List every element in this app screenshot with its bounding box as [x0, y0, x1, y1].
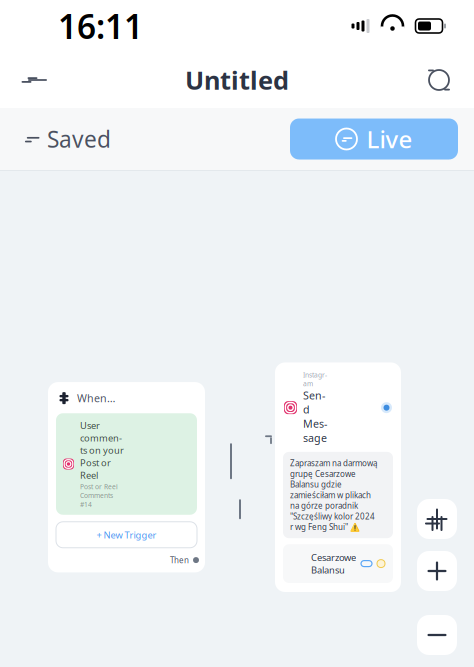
- staticText: Cesarzowe Balansu: [311, 551, 356, 576]
- staticText: 16:11: [58, 4, 143, 48]
- staticText: When…: [77, 391, 115, 405]
- staticText: Untitled: [185, 63, 289, 97]
- staticText: Then: [170, 555, 189, 565]
- button[interactable]: Auto arrange: [417, 499, 457, 539]
- staticText: Instagram: [303, 370, 327, 388]
- staticText: Saved: [47, 124, 111, 154]
- button[interactable]: Zoom in: [417, 551, 457, 591]
- staticText: Zapraszam na darmową grupę Cesarzowe Bal…: [290, 458, 377, 532]
- button[interactable]: Zoom out: [417, 615, 457, 655]
- button[interactable]: Live: [290, 118, 458, 159]
- staticText: Live: [366, 123, 412, 155]
- staticText: Post or Reel Comments #14: [80, 482, 118, 509]
- button[interactable]: Sync: [416, 57, 462, 103]
- button[interactable]: + New Trigger: [56, 522, 197, 548]
- staticText: User comments on your Post or Reel: [80, 419, 124, 481]
- button[interactable]: User comments on your Post or Reel: [56, 413, 197, 515]
- staticText: Send Message: [303, 388, 327, 445]
- staticText: + New Trigger: [96, 529, 156, 541]
- button[interactable]: Saved: [24, 118, 111, 160]
- button[interactable]: Back: [12, 57, 58, 103]
